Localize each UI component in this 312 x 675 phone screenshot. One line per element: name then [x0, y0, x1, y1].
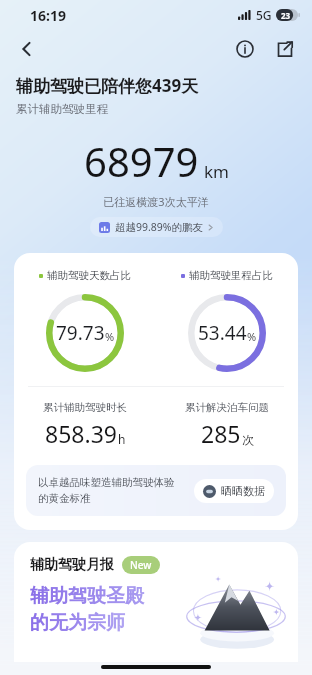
- button[interactable]: 辅助驾驶月报: [14, 542, 298, 662]
- staticText: New: [130, 558, 152, 572]
- staticText: 累计解决泊车问题: [185, 401, 269, 414]
- button[interactable]: Info: [228, 32, 262, 66]
- staticText: 辅助驾驶圣殿: [30, 584, 144, 608]
- staticText: 68979: [84, 134, 199, 188]
- staticText: 的无为宗师: [30, 611, 125, 635]
- staticText: 53.44: [198, 320, 247, 346]
- button[interactable]: Share: [268, 32, 302, 66]
- button[interactable]: 以卓越品味塑造辅助驾驶体验 的黄金标准: [26, 465, 286, 516]
- button[interactable]: Back: [8, 30, 46, 68]
- staticText: 285: [201, 418, 241, 449]
- staticText: 晒晒数据: [221, 484, 265, 498]
- staticText: 辅助驾驶里程占比: [189, 269, 273, 282]
- staticText: 累计辅助驾驶时长: [43, 401, 127, 414]
- staticText: 辅助驾驶月报: [30, 556, 114, 574]
- staticText: 辅助驾驶天数占比: [47, 269, 131, 282]
- staticText: 超越99.89%的鹏友: [115, 220, 204, 234]
- staticText: 5G: [256, 7, 272, 23]
- staticText: 累计辅助驾驶里程: [16, 102, 108, 116]
- staticText: 16:19: [30, 6, 66, 25]
- staticText: 23: [281, 10, 291, 21]
- staticText: h: [118, 431, 126, 447]
- staticText: 以卓越品味塑造辅助驾驶体验 的黄金标准: [38, 476, 194, 505]
- staticText: 次: [242, 432, 254, 447]
- staticText: km: [204, 160, 229, 183]
- button[interactable]: 晒晒数据: [194, 479, 274, 503]
- staticText: 辅助驾驶已陪伴您439天: [16, 74, 199, 97]
- staticText: %: [105, 329, 115, 344]
- staticText: %: [247, 329, 257, 344]
- staticText: 79.73: [56, 320, 105, 346]
- staticText: 858.39: [45, 418, 117, 449]
- staticText: 已往返横渡3次太平洋: [0, 194, 312, 209]
- button[interactable]: 超越99.89%的鹏友: [90, 217, 223, 237]
